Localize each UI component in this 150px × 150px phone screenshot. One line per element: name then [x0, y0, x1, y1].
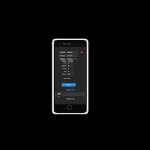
button[interactable]: Phone mockup showing a dark form screen	[0, 0, 150, 150]
